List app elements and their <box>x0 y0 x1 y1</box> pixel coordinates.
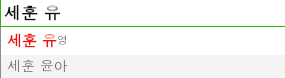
button[interactable]: 세훈 유 <box>0 0 285 27</box>
staticText: 세훈 윤아 <box>7 55 68 75</box>
button[interactable]: 세훈 윤아 <box>0 55 285 78</box>
button[interactable]: 세훈 유영 <box>0 27 285 55</box>
staticText: 세훈 유 <box>4 0 61 24</box>
staticText: 세훈 유영 <box>7 29 69 50</box>
